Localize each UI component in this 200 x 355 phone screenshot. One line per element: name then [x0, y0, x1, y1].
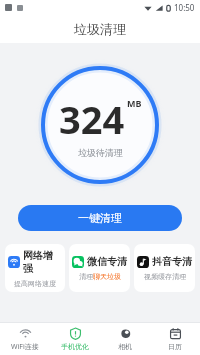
- button[interactable]: 抖音专清: [134, 244, 195, 292]
- staticText: 324: [59, 93, 125, 145]
- button[interactable]: WiFi连接: [0, 325, 50, 354]
- staticText: 相机: [118, 342, 132, 351]
- button[interactable]: 日历: [150, 325, 200, 353]
- button[interactable]: 一键清理: [18, 205, 182, 231]
- staticText: 垃圾待清理: [78, 147, 123, 158]
- staticText: 日历: [168, 342, 182, 351]
- staticText: 抖音专清: [152, 255, 192, 268]
- staticText: 10:50: [174, 2, 195, 13]
- staticText: 视频缓存清理: [144, 272, 186, 281]
- staticText: 手机优化: [61, 342, 89, 351]
- staticText: 微信专清: [87, 255, 127, 268]
- button[interactable]: 手机优化: [50, 325, 100, 353]
- staticText: 清理聊天垃圾: [79, 272, 121, 281]
- staticText: 提高网络速度: [14, 279, 56, 288]
- staticText: MB: [127, 97, 142, 109]
- staticText: WiFi连接: [11, 342, 39, 352]
- staticText: 一键清理: [78, 211, 122, 225]
- button[interactable]: 网络增强: [5, 244, 65, 292]
- staticText: 垃圾清理: [74, 21, 126, 37]
- button[interactable]: 微信专清: [69, 244, 130, 292]
- staticText: 网络增强: [23, 249, 62, 275]
- button[interactable]: 相机: [100, 325, 150, 353]
